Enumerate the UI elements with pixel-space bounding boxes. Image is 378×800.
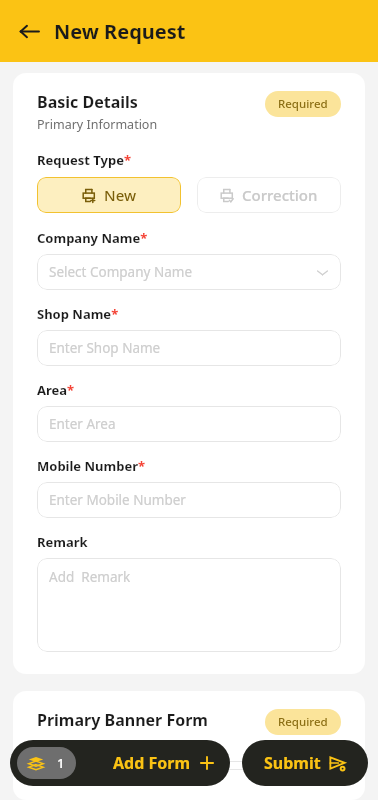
button[interactable]: Add Remark bbox=[37, 558, 341, 652]
staticText: Select Company Name bbox=[49, 263, 316, 281]
button[interactable]: 1 bbox=[10, 740, 230, 786]
staticText: Required bbox=[278, 96, 328, 112]
staticText: Request Type* bbox=[37, 151, 131, 169]
button[interactable]: Select Company Name bbox=[37, 254, 341, 290]
staticText: 1 bbox=[57, 754, 65, 772]
button[interactable]: New bbox=[37, 177, 181, 213]
staticText: Add Form bbox=[113, 752, 190, 774]
button[interactable] bbox=[37, 761, 341, 770]
staticText: Enter Mobile Number bbox=[49, 491, 329, 509]
staticText: Mobile Number* bbox=[37, 457, 146, 475]
staticText: Enter Shop Name bbox=[49, 339, 329, 357]
staticText: Enter Area bbox=[49, 415, 329, 433]
staticText: Required bbox=[278, 714, 328, 730]
button[interactable]: Submit bbox=[242, 740, 368, 786]
staticText: Company Name* bbox=[37, 229, 148, 247]
staticText: Correction bbox=[242, 185, 318, 205]
staticText: Primary Information bbox=[37, 116, 158, 133]
staticText: New bbox=[104, 185, 137, 205]
staticText: Submit bbox=[264, 752, 321, 774]
button[interactable]: Required bbox=[265, 709, 341, 735]
button[interactable]: Enter Shop Name bbox=[37, 330, 341, 366]
button[interactable]: Enter Mobile Number bbox=[37, 482, 341, 518]
staticText: Add Remark bbox=[49, 568, 329, 586]
button[interactable]: Back bbox=[12, 14, 46, 48]
button[interactable]: Correction bbox=[197, 177, 341, 213]
staticText: Remark bbox=[37, 533, 88, 551]
staticText: Primary Banner Form bbox=[37, 709, 265, 731]
button[interactable]: Required bbox=[265, 91, 341, 117]
staticText: New Request bbox=[54, 18, 186, 45]
staticText: Basic Details bbox=[37, 91, 138, 113]
staticText: Area* bbox=[37, 381, 75, 399]
button[interactable]: Enter Area bbox=[37, 406, 341, 442]
staticText: Shop Name* bbox=[37, 305, 119, 323]
